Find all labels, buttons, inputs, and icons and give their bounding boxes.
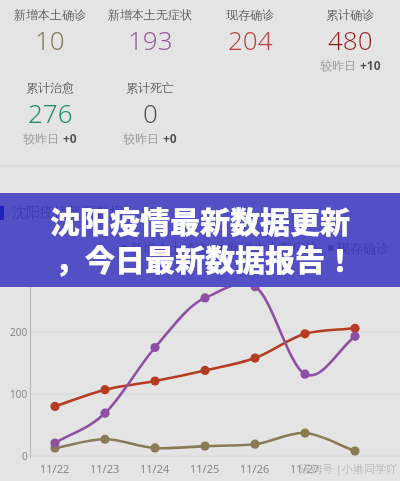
button[interactable]: 累计确诊	[290, 7, 400, 73]
staticText: 较昨日	[320, 57, 360, 73]
staticText: 新增本土确诊	[14, 7, 86, 22]
staticText: 11/24	[140, 461, 170, 476]
staticText: 11/23	[90, 461, 120, 476]
button[interactable]: 新增本土确诊	[0, 7, 110, 57]
staticText: 276	[28, 95, 73, 130]
button[interactable]: 现存确诊	[190, 7, 310, 57]
staticText: 沈阳疫情最新数据更新	[0, 198, 400, 241]
staticText: 11/22	[40, 461, 70, 476]
staticText: ，今日最新数据报告！	[5, 236, 400, 279]
staticText: 204	[228, 22, 273, 57]
button[interactable]: 累计治愈	[0, 80, 110, 146]
button[interactable]: 新增本土无症状	[90, 7, 210, 57]
staticText: 0	[22, 449, 28, 463]
staticText: 11/26	[240, 461, 270, 476]
staticText: 11/25	[190, 461, 220, 476]
staticText: 0	[143, 95, 158, 130]
staticText: 193	[128, 22, 173, 57]
staticText: 现存确诊	[226, 7, 274, 22]
staticText: 较昨日	[23, 130, 63, 146]
staticText: 新增本土无症状	[227, 240, 318, 256]
staticText: 480	[328, 22, 373, 57]
staticText: +0	[63, 130, 77, 146]
staticText: 10	[35, 22, 65, 57]
staticText: 11/27	[290, 461, 320, 476]
staticText: 较昨日	[123, 130, 163, 146]
staticText: 沈阳疫情最新数据	[12, 204, 124, 222]
staticText: +0	[163, 130, 177, 146]
staticText: 新增本土无症状	[108, 7, 192, 22]
staticText: 新增本土确诊	[130, 240, 208, 256]
staticText: +10	[360, 57, 381, 73]
staticText: 100	[10, 387, 28, 401]
staticText: 累计死亡	[126, 80, 174, 95]
staticText: 汤姆号 |小港同学吖	[300, 461, 397, 476]
button[interactable]: 累计死亡	[90, 80, 210, 146]
staticText: 200	[10, 325, 28, 339]
staticText: 累计确诊	[326, 7, 374, 22]
staticText: 现存确诊	[337, 240, 389, 256]
staticText: 累计治愈	[26, 80, 74, 95]
